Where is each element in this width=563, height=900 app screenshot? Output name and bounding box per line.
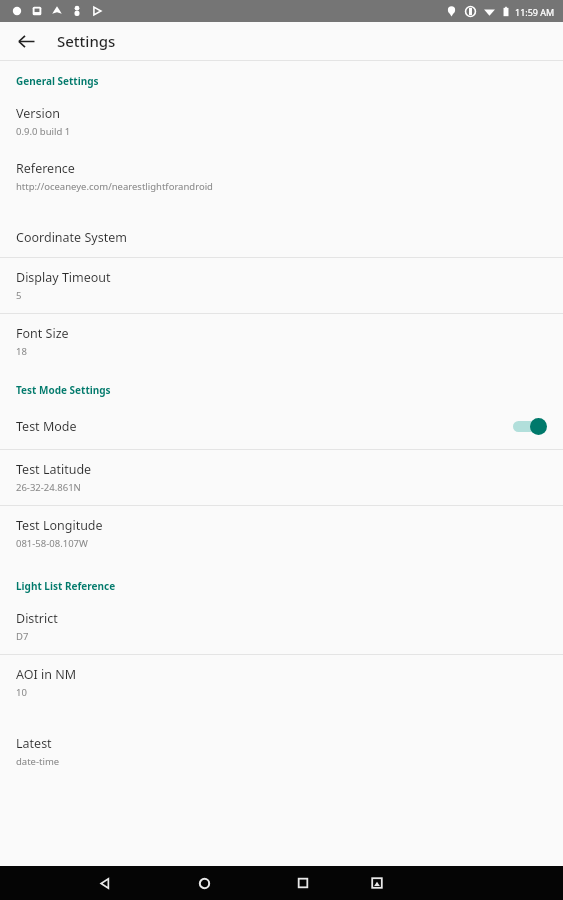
button[interactable]: Recent apps bbox=[286, 866, 320, 900]
staticText: 5 bbox=[16, 289, 22, 302]
button[interactable]: Display Timeout bbox=[0, 258, 563, 313]
button[interactable]: Test Mode toggle bbox=[509, 414, 547, 438]
staticText: Test Latitude bbox=[16, 461, 92, 478]
staticText: Test Longitude bbox=[16, 517, 103, 534]
staticText: Test Mode bbox=[16, 418, 77, 435]
staticText: http://oceaneye.com/nearestlightforandro… bbox=[16, 180, 213, 193]
staticText: District bbox=[16, 610, 58, 627]
staticText: 11:59 AM bbox=[515, 6, 555, 18]
button[interactable]: Home bbox=[187, 866, 221, 900]
staticText: Settings bbox=[57, 31, 116, 51]
button[interactable]: Font Size bbox=[0, 314, 563, 369]
button[interactable]: Test Latitude bbox=[0, 450, 563, 505]
button[interactable]: AOI in NM bbox=[0, 655, 563, 710]
staticText: Light List Reference bbox=[16, 579, 116, 593]
staticText: Coordinate System bbox=[16, 229, 127, 246]
button[interactable]: Version bbox=[0, 94, 563, 149]
staticText: Display Timeout bbox=[16, 269, 111, 286]
staticText: D7 bbox=[16, 630, 29, 643]
staticText: Font Size bbox=[16, 325, 69, 342]
staticText: 0.9.0 build 1 bbox=[16, 125, 71, 138]
button[interactable]: Back bbox=[88, 866, 122, 900]
staticText: 081-58-08.107W bbox=[16, 537, 88, 550]
staticText: Latest bbox=[16, 735, 52, 752]
staticText: AOI in NM bbox=[16, 666, 77, 683]
button[interactable]: Latest bbox=[0, 724, 563, 779]
staticText: 10 bbox=[16, 686, 27, 699]
staticText: date-time bbox=[16, 755, 60, 768]
button[interactable]: Back bbox=[10, 25, 42, 57]
staticText: Reference bbox=[16, 160, 75, 177]
button[interactable]: Reference bbox=[0, 149, 563, 204]
staticText: Version bbox=[16, 105, 60, 122]
button[interactable]: Test Longitude bbox=[0, 506, 563, 561]
button[interactable]: Test Mode bbox=[0, 403, 563, 449]
button[interactable]: District bbox=[0, 599, 563, 654]
staticText: 18 bbox=[16, 345, 27, 358]
staticText: 26-32-24.861N bbox=[16, 481, 81, 494]
staticText: General Settings bbox=[16, 74, 99, 88]
staticText: Test Mode Settings bbox=[16, 383, 111, 397]
button[interactable]: Coordinate System bbox=[0, 218, 563, 257]
button[interactable]: Screenshot bbox=[360, 866, 394, 900]
